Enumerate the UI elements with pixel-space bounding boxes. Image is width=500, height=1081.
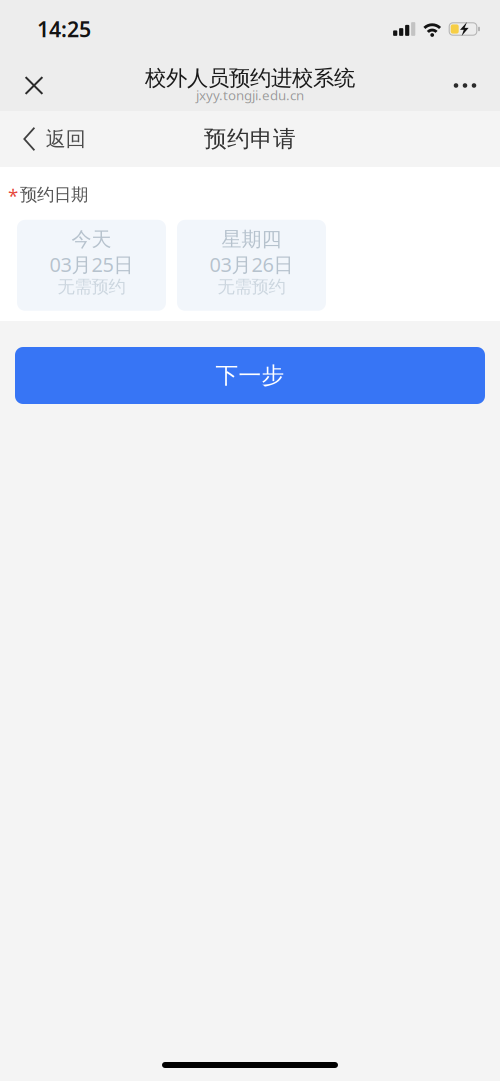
button[interactable]: More options: [441, 61, 489, 109]
staticText: 无需预约: [217, 276, 285, 297]
staticText: 下一步: [215, 362, 284, 389]
staticText: 无需预约: [57, 276, 125, 297]
staticText: 星期四: [221, 227, 281, 252]
staticText: 返回: [46, 127, 86, 151]
button[interactable]: Close: [10, 61, 58, 109]
staticText: jxyy.tongji.edu.cn: [196, 86, 304, 104]
staticText: 校外人员预约进校系统: [145, 65, 355, 91]
staticText: 预约日期: [20, 184, 88, 205]
button[interactable]: 返回: [0, 111, 102, 167]
staticText: 今天: [71, 227, 111, 252]
button[interactable]: 今天: [17, 220, 166, 311]
staticText: 14:25: [37, 15, 91, 43]
staticText: *: [8, 183, 18, 208]
staticText: 03月26日: [209, 251, 293, 278]
button[interactable]: 下一步: [15, 347, 485, 404]
staticText: 预约申请: [204, 125, 296, 153]
staticText: 03月25日: [49, 251, 133, 278]
button[interactable]: 星期四: [177, 220, 326, 311]
